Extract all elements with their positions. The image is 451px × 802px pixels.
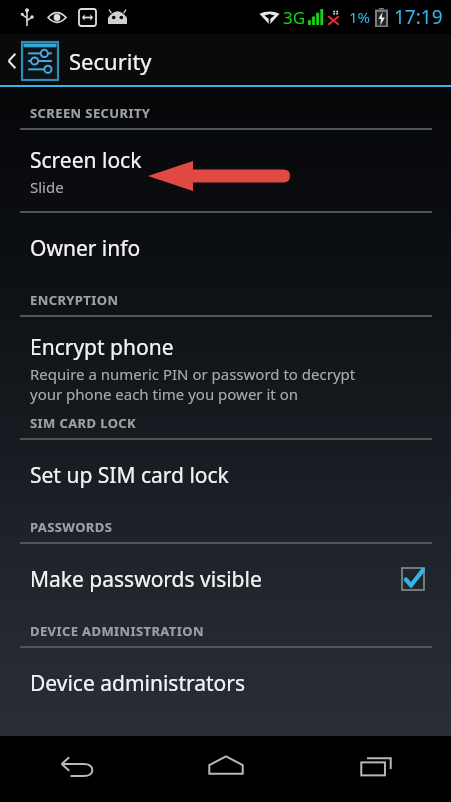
- staticText: ENCRYPTION: [30, 291, 119, 309]
- staticText: Device administrators: [30, 669, 246, 698]
- button[interactable]: Make passwords visible: [0, 544, 451, 614]
- button[interactable]: Back: [0, 736, 151, 796]
- staticText: Slide: [30, 177, 64, 197]
- button[interactable]: Set up SIM card lock: [0, 440, 451, 510]
- button[interactable]: Recent apps: [301, 736, 451, 796]
- staticText: SCREEN SECURITY: [30, 104, 151, 122]
- staticText: Require a numeric PIN or password to dec…: [30, 364, 356, 404]
- button[interactable]: Navigate up: [0, 36, 160, 86]
- staticText: Make passwords visible: [30, 565, 401, 594]
- button[interactable]: Home: [151, 736, 301, 796]
- staticText: 1%: [349, 7, 371, 27]
- staticText: SIM CARD LOCK: [30, 414, 137, 432]
- button[interactable]: Device administrators: [0, 648, 451, 718]
- staticText: PASSWORDS: [30, 518, 113, 536]
- button[interactable]: Owner info: [0, 213, 451, 283]
- staticText: Encrypt phone: [30, 333, 174, 362]
- staticText: 17:19: [394, 4, 443, 30]
- staticText: Set up SIM card lock: [30, 461, 229, 490]
- staticText: 3G: [283, 6, 306, 29]
- staticText: Security: [69, 46, 152, 76]
- staticText: DEVICE ADMINISTRATION: [30, 622, 204, 640]
- staticText: Screen lock: [30, 146, 142, 175]
- button[interactable]: Encrypt phone: [0, 317, 451, 404]
- staticText: Owner info: [30, 234, 141, 263]
- button[interactable]: Screen lock: [0, 130, 451, 197]
